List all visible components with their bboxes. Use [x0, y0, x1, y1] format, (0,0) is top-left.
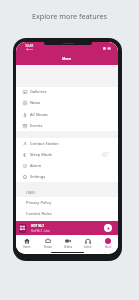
button[interactable]: Play: [104, 224, 112, 232]
button[interactable]: Alarm: [16, 160, 118, 171]
button[interactable]: Contact Station: [16, 138, 118, 149]
staticText: Alarm: [30, 163, 42, 168]
staticText: Settings: [30, 174, 46, 179]
button[interactable]: All Shows: [16, 109, 118, 120]
staticText: More: [62, 56, 72, 61]
staticText: 12:31: [25, 43, 34, 48]
staticText: News: [30, 100, 41, 105]
staticText: Home: [23, 245, 31, 249]
staticText: Listen: [84, 245, 92, 249]
button[interactable]: Shows: [37, 235, 58, 251]
button[interactable]: Privacy Policy: [16, 197, 118, 208]
staticText: More: [105, 245, 112, 249]
staticText: LINKS: [26, 191, 36, 195]
staticText: ◀ WiFi: [26, 48, 33, 51]
button[interactable]: Galleries: [16, 86, 118, 97]
staticText: Videos: [64, 245, 73, 249]
button[interactable]: Settings: [16, 171, 118, 182]
button[interactable]: Sleep Mode: [16, 149, 118, 160]
button[interactable]: Videos: [58, 235, 78, 251]
button[interactable]: More: [98, 235, 118, 251]
button[interactable]: Sleep mode toggle: [102, 152, 110, 157]
button[interactable]: News: [16, 97, 118, 108]
staticText: Contest Rules: [26, 211, 52, 216]
staticText: Contact Station: [30, 141, 59, 146]
staticText: Hot 96.7 - Live: [31, 229, 50, 233]
button[interactable]: Contest Rules: [16, 208, 118, 219]
staticText: Events: [30, 123, 43, 128]
button[interactable]: Events: [16, 120, 118, 131]
staticText: Shows: [44, 245, 52, 249]
button[interactable]: HOT 96.7: [16, 221, 118, 235]
button[interactable]: Home: [16, 235, 37, 251]
staticText: Explore more features: [0, 11, 139, 21]
button[interactable]: Listen: [78, 235, 98, 251]
staticText: Galleries: [30, 89, 47, 94]
staticText: All Shows: [30, 112, 48, 117]
staticText: HOT 96.7: [31, 224, 45, 228]
staticText: Sleep Mode: [30, 152, 53, 157]
staticText: Privacy Policy: [26, 200, 52, 205]
